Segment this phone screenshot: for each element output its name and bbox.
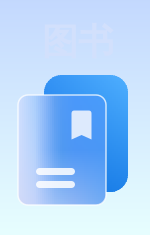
staticText: 图书	[42, 20, 114, 64]
